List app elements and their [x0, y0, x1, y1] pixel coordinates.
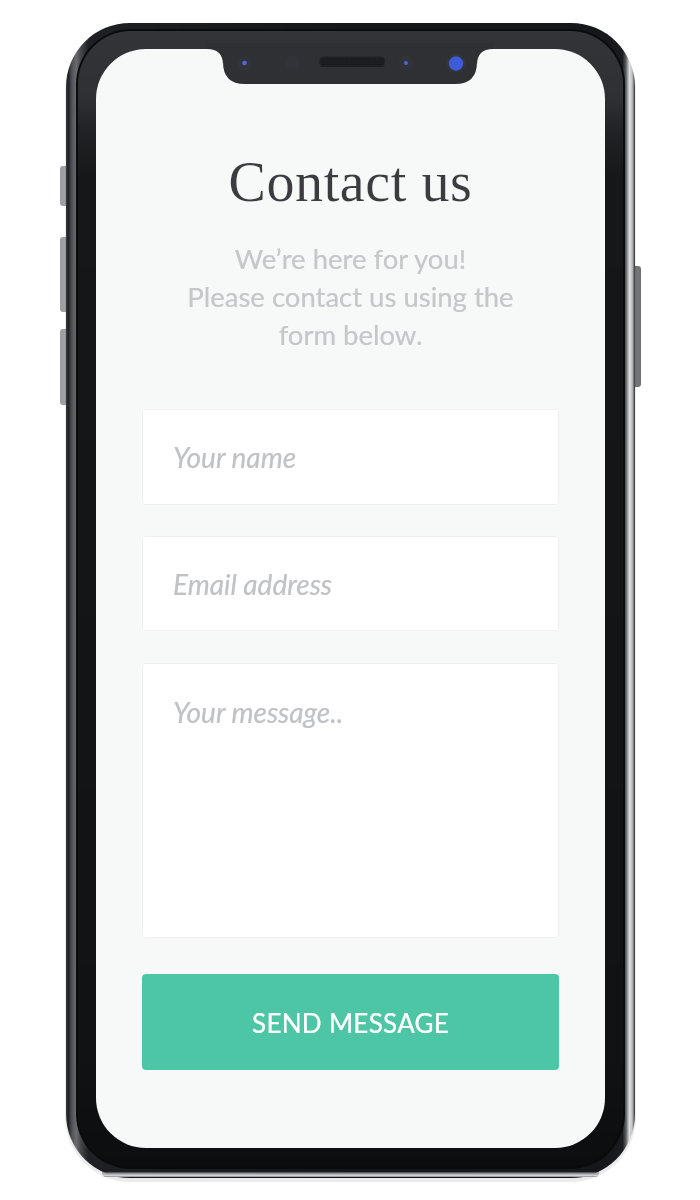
staticText: Your name	[173, 440, 297, 474]
button[interactable]: SEND MESSAGE	[142, 974, 559, 1070]
button[interactable]: Your name	[142, 409, 559, 505]
button[interactable]: Email address	[142, 536, 559, 631]
staticText: Contact us	[96, 151, 605, 213]
staticText: Your message..	[173, 695, 344, 729]
staticText: SEND MESSAGE	[252, 1007, 450, 1038]
staticText: Email address	[173, 567, 333, 601]
staticText: We’re here for you! Please contact us us…	[96, 242, 605, 351]
button[interactable]: Your message..	[142, 663, 559, 938]
